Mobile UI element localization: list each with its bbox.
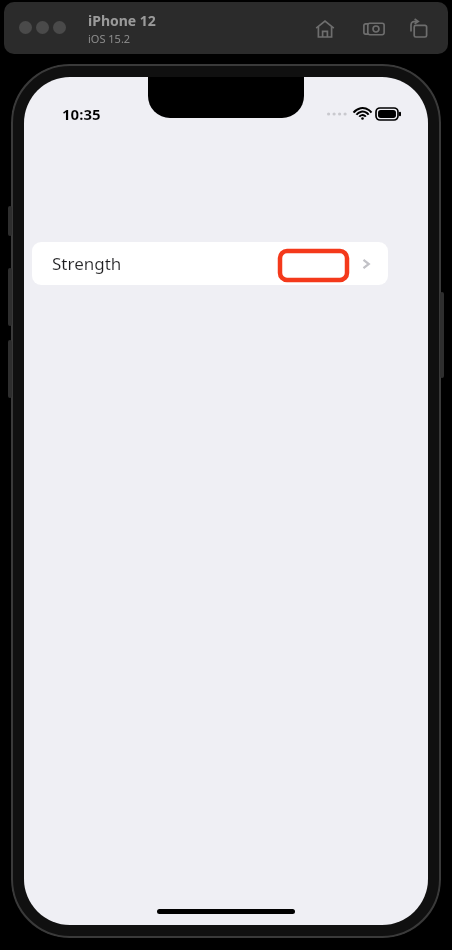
staticText: 10:35 (62, 104, 101, 124)
staticText: iOS 15.2 (88, 31, 131, 46)
button[interactable] (36, 21, 49, 34)
button[interactable]: Screenshot (358, 13, 390, 45)
button[interactable] (53, 21, 66, 34)
button[interactable] (19, 21, 32, 34)
staticText: Strength (52, 252, 122, 275)
button[interactable]: Home (309, 13, 341, 45)
staticText: iPhone 12 (88, 11, 156, 30)
button[interactable] (278, 249, 349, 282)
button[interactable]: Rotate (403, 13, 435, 45)
button[interactable]: Strength (32, 242, 388, 285)
